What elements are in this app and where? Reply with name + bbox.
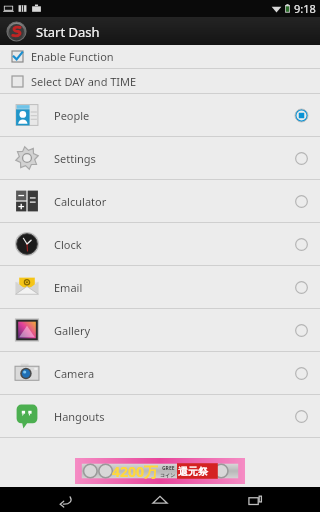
button[interactable]: Back [35,487,95,512]
staticText: コイン [160,472,176,478]
staticText: People [54,108,295,123]
button[interactable]: Gallery [0,309,320,351]
button[interactable]: Clock [0,223,320,265]
staticText: Hangouts [54,409,295,424]
staticText: GREE [162,465,175,472]
staticText: Enable Function [31,49,114,64]
staticText: Start Dash [36,23,100,41]
button[interactable]: Advertisement [75,458,245,484]
button[interactable]: Camera [0,352,320,394]
staticText: 4200万 [112,462,159,481]
staticText: Email [54,280,295,295]
button[interactable]: Calculator [0,180,320,222]
button[interactable]: Enable Function [0,45,320,68]
staticText: 還元祭 [178,465,208,478]
button[interactable]: Hangouts [0,395,320,437]
button[interactable]: Select DAY and TIME [0,69,320,93]
button[interactable]: People [0,94,320,136]
staticText: Camera [54,366,295,381]
button[interactable]: Home [130,487,190,512]
staticText: Gallery [54,323,295,338]
staticText: Calculator [54,194,295,209]
staticText: Select DAY and TIME [31,74,137,89]
staticText: 9:18 [294,1,316,16]
button[interactable]: Settings [0,137,320,179]
button[interactable]: Recent apps [225,487,285,512]
staticText: Clock [54,237,295,252]
staticText: Settings [54,151,295,166]
button[interactable]: Email [0,266,320,308]
